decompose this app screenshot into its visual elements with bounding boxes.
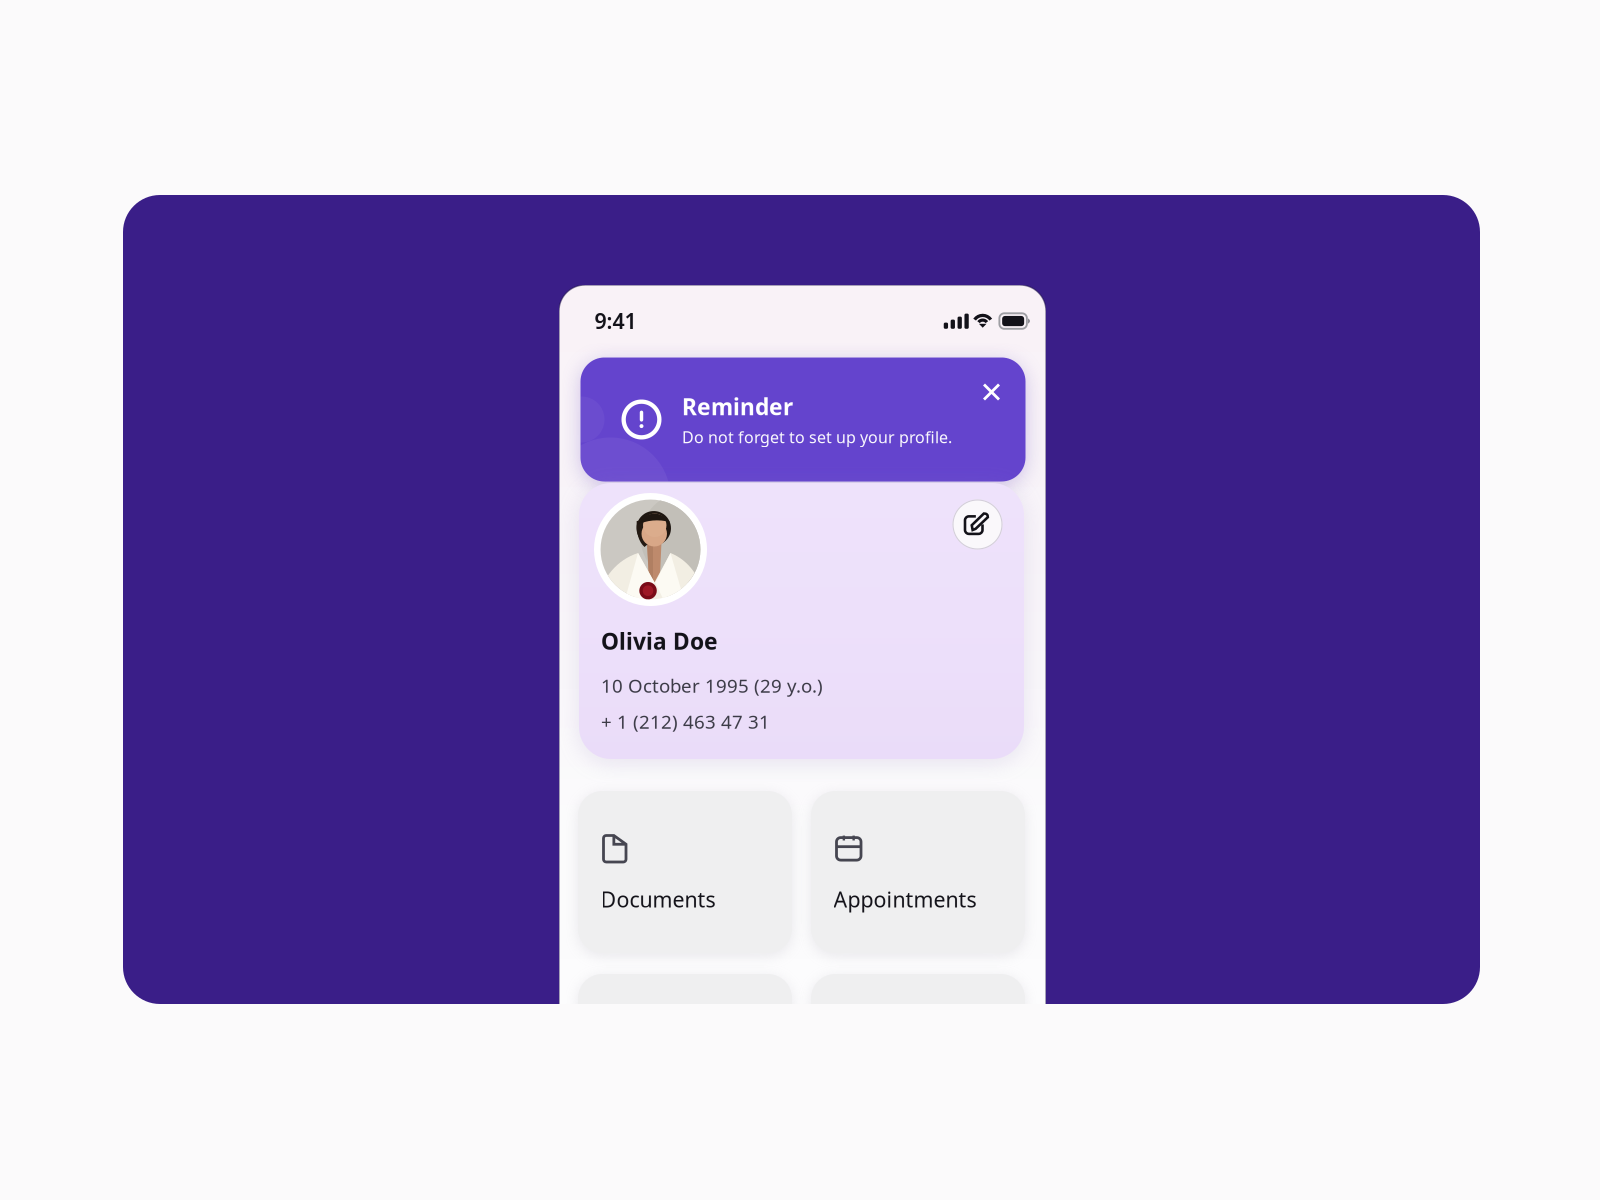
button[interactable]: Documents [578, 791, 792, 953]
staticText: Reminder [682, 391, 793, 422]
staticText: Do not forget to set up your profile. [682, 426, 952, 448]
staticText: 9:41 [594, 306, 636, 335]
staticText: Olivia Doe [601, 626, 718, 656]
button[interactable]: Dismiss reminder [972, 372, 1011, 411]
button[interactable]: Prescriptions [578, 974, 792, 1136]
staticText: Appointments [833, 885, 976, 913]
staticText: + 1 (212) 463 47 31 [601, 709, 770, 734]
button[interactable]: Edit profile [952, 499, 1002, 549]
staticText: 10 October 1995 (29 y.o.) [601, 673, 823, 698]
button[interactable]: Results [811, 974, 1025, 1136]
staticText: Documents [600, 885, 715, 913]
button[interactable]: Appointments [811, 791, 1025, 953]
